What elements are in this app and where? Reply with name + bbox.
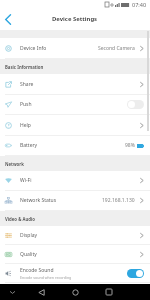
button[interactable]: HD	[0, 245, 150, 264]
staticText: Device Settings	[52, 15, 98, 23]
staticText: Share	[20, 81, 34, 88]
staticText: Device Info	[20, 45, 47, 52]
button[interactable]: Back	[34, 284, 49, 300]
button[interactable]: Device Info	[0, 38, 150, 59]
button[interactable]: Network Status	[0, 191, 150, 211]
button[interactable]: Recent apps	[101, 284, 116, 300]
button[interactable]: Hide keyboard	[5, 284, 20, 300]
button[interactable]: Toggle off	[127, 100, 144, 109]
staticText: Basic Information	[5, 64, 44, 70]
staticText: Quality	[20, 251, 37, 258]
button[interactable]: Push	[0, 95, 150, 115]
staticText: 192.168.1.130	[102, 197, 135, 204]
staticText: 07:40	[132, 1, 147, 8]
staticText: Encode sound when recording	[20, 275, 72, 280]
button[interactable]: Home	[68, 284, 83, 300]
button[interactable]: Help	[0, 115, 150, 136]
staticText: Battery	[20, 142, 38, 149]
staticText: Push	[20, 101, 32, 108]
staticText: Network	[5, 161, 24, 167]
button[interactable]: Toggle on	[127, 269, 144, 278]
staticText: HD	[6, 253, 11, 257]
staticText: Video & Audio	[5, 216, 35, 222]
button[interactable]: Display	[0, 226, 150, 245]
button[interactable]: Share	[0, 74, 150, 95]
staticText: 98%	[125, 142, 135, 149]
button[interactable]: Back	[0, 9, 15, 30]
staticText: Encode Sound	[20, 267, 54, 274]
button[interactable]: Battery	[0, 136, 150, 156]
staticText: Second Camera	[98, 45, 135, 52]
staticText: Wi-Fi	[20, 177, 32, 184]
staticText: Display	[20, 232, 38, 239]
button[interactable]: Encode Sound	[0, 264, 150, 283]
staticText: Help	[20, 122, 31, 129]
staticText: Network Status	[20, 197, 57, 204]
button[interactable]: Wi-Fi	[0, 171, 150, 191]
